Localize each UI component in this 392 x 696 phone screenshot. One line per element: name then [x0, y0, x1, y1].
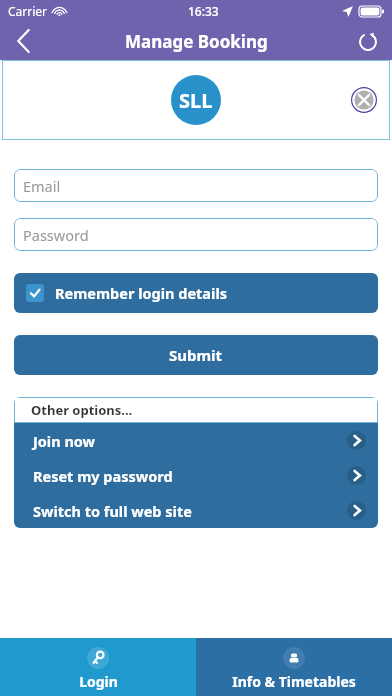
- button[interactable]: Reset my password: [14, 458, 378, 493]
- staticText: Info & Timetables: [232, 672, 356, 691]
- button[interactable]: Close: [350, 86, 378, 114]
- staticText: Password: [23, 225, 89, 245]
- button[interactable]: Refresh: [344, 22, 392, 60]
- staticText: Reset my password: [33, 466, 173, 486]
- button[interactable]: Switch to full web site: [14, 493, 378, 528]
- button[interactable]: Login: [0, 638, 196, 696]
- staticText: Login: [79, 672, 118, 691]
- staticText: Submit: [169, 345, 223, 365]
- staticText: Other options...: [31, 401, 133, 419]
- button[interactable]: Password: [14, 218, 378, 251]
- staticText: SLL: [179, 87, 213, 114]
- button[interactable]: Join now: [14, 423, 378, 458]
- staticText: Email: [23, 176, 61, 196]
- button[interactable]: Submit: [14, 335, 378, 375]
- staticText: Carrier: [8, 3, 48, 19]
- staticText: 16:33: [188, 3, 219, 19]
- button[interactable]: Info & Timetables: [196, 638, 392, 696]
- button[interactable]: Email: [14, 169, 378, 202]
- staticText: Remember login details: [55, 283, 227, 303]
- staticText: Manage Booking: [125, 30, 268, 53]
- staticText: Switch to full web site: [33, 501, 192, 521]
- button[interactable]: Remember login details: [14, 273, 378, 313]
- staticText: Join now: [33, 431, 96, 451]
- button[interactable]: Back: [0, 22, 46, 60]
